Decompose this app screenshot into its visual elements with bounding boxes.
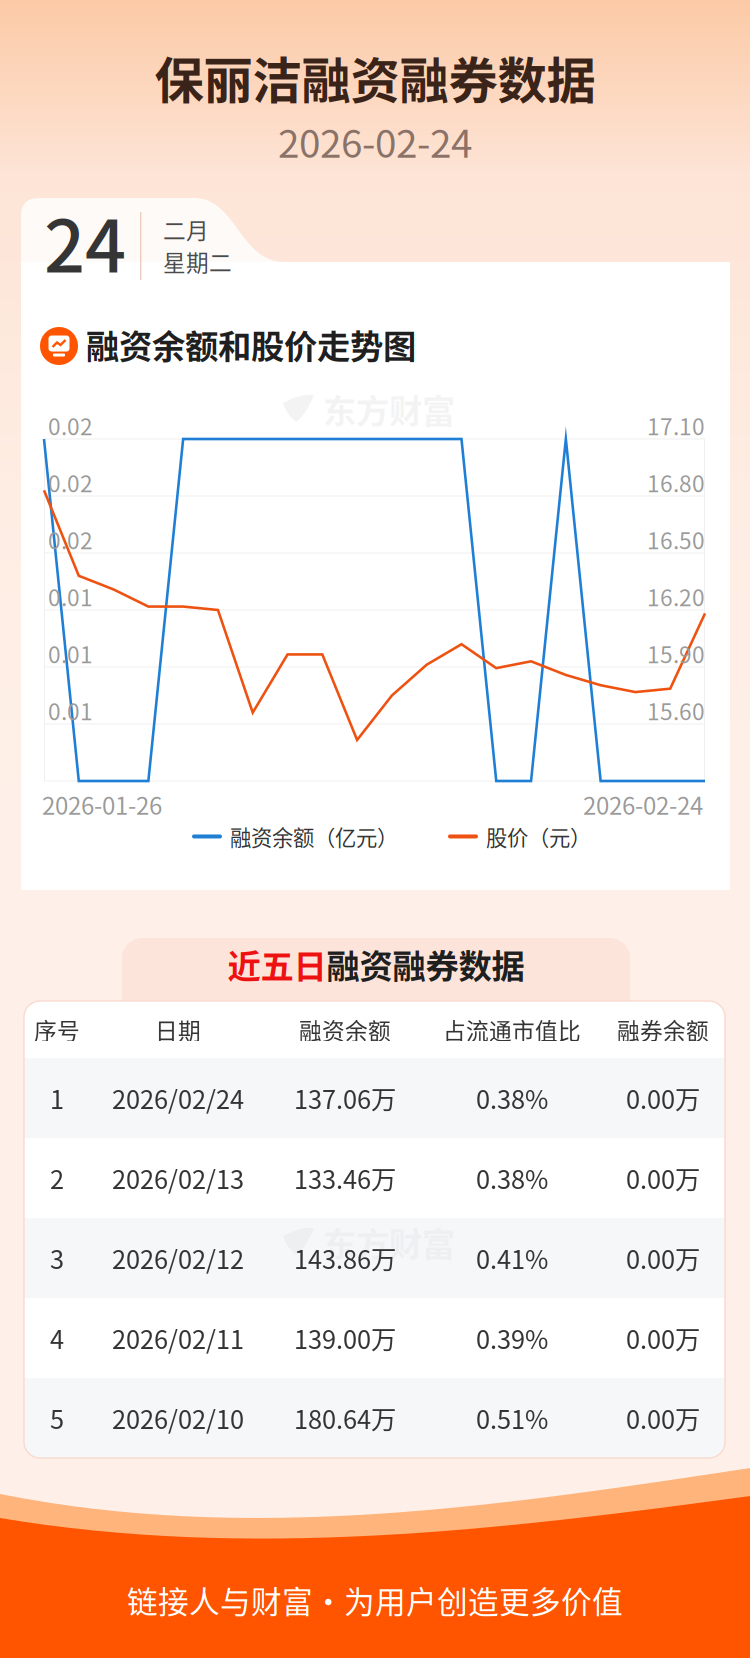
staticText: 融资余额 xyxy=(299,1013,391,1046)
staticText: 2026/02/13 xyxy=(112,1160,244,1196)
staticText: 融资余额（亿元） xyxy=(230,821,398,852)
staticText: 15.60 xyxy=(647,694,705,727)
staticText: 2026/02/10 xyxy=(112,1400,244,1436)
staticText: 链接人与财富·为用户创造更多价值 xyxy=(127,1578,623,1622)
staticText: 137.06万 xyxy=(294,1080,396,1116)
staticText: 180.64万 xyxy=(294,1400,396,1436)
staticText: 日期 xyxy=(155,1013,201,1046)
staticText: 139.00万 xyxy=(294,1320,396,1356)
staticText: 0.38% xyxy=(476,1160,548,1196)
staticText: 融券余额 xyxy=(617,1013,709,1046)
staticText: 0.00万 xyxy=(626,1240,700,1276)
staticText: 2026/02/11 xyxy=(112,1320,244,1356)
staticText: 143.86万 xyxy=(294,1240,396,1276)
staticText: 0.39% xyxy=(476,1320,548,1356)
staticText: 0.01 xyxy=(48,580,93,613)
staticText: 东方财富 xyxy=(323,1218,455,1266)
staticText: 融资余额和股价走势图 xyxy=(86,320,416,368)
staticText: 5 xyxy=(50,1400,64,1436)
staticText: 0.01 xyxy=(48,694,93,727)
staticText: 2026-01-26 xyxy=(42,787,162,822)
staticText: 16.20 xyxy=(647,580,705,613)
staticText: 星期二 xyxy=(163,245,232,278)
staticText: 24 xyxy=(44,189,126,293)
staticText: 股价（元） xyxy=(486,821,591,852)
staticText: 17.10 xyxy=(647,409,705,442)
staticText: 15.90 xyxy=(647,637,705,670)
staticText: 2026/02/12 xyxy=(112,1240,244,1276)
staticText: 0.01 xyxy=(48,637,93,670)
staticText: 0.38% xyxy=(476,1080,548,1116)
staticText: 东方财富 xyxy=(323,385,455,433)
staticText: 16.80 xyxy=(647,466,705,499)
staticText: 0.02 xyxy=(48,466,93,499)
staticText: 4 xyxy=(50,1320,64,1356)
staticText: 0.00万 xyxy=(626,1320,700,1356)
staticText: 0.41% xyxy=(476,1240,548,1276)
staticText: 1 xyxy=(50,1080,64,1116)
staticText: 0.02 xyxy=(48,409,93,442)
staticText: 133.46万 xyxy=(294,1160,396,1196)
staticText: 2026-02-24 xyxy=(583,787,703,822)
staticText: 序号 xyxy=(34,1013,80,1046)
staticText: 0.00万 xyxy=(626,1400,700,1436)
staticText: 16.50 xyxy=(647,523,705,556)
staticText: 0.02 xyxy=(48,523,93,556)
staticText: 保丽洁融资融券数据 xyxy=(154,41,595,113)
staticText: 2026-02-24 xyxy=(278,113,472,169)
staticText: 0.00万 xyxy=(626,1160,700,1196)
staticText: 融资融券数据 xyxy=(326,940,524,988)
staticText: 3 xyxy=(50,1240,64,1276)
staticText: 0.51% xyxy=(476,1400,548,1436)
staticText: 2 xyxy=(50,1160,64,1196)
staticText: 近五日 xyxy=(227,940,326,988)
staticText: 二月 xyxy=(163,213,209,246)
staticText: 占流通市值比 xyxy=(443,1013,581,1046)
staticText: 0.00万 xyxy=(626,1080,700,1116)
staticText: 2026/02/24 xyxy=(112,1080,244,1116)
